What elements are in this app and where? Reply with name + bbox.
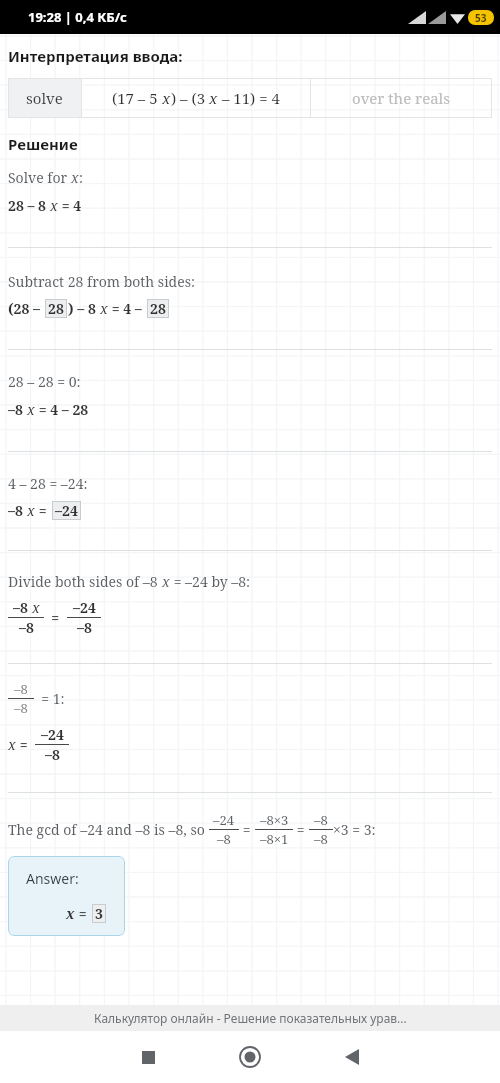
staticText: –24: [55, 501, 78, 520]
staticText: –8: [8, 400, 27, 419]
staticText: x: [27, 400, 35, 419]
staticText: Answer:: [26, 869, 79, 888]
staticText: (28 –: [8, 299, 44, 318]
staticText: (17 – 5: [112, 88, 162, 108]
staticText: x: [162, 572, 170, 591]
staticText: –8: [217, 830, 231, 848]
staticText: ) – (3: [171, 88, 209, 108]
staticText: 3: [95, 904, 103, 923]
staticText: –24: [73, 598, 96, 617]
staticText: = 4 – 28: [35, 400, 89, 419]
staticText: Solve for: [8, 168, 71, 187]
staticText: x: [162, 88, 171, 108]
staticText: 19:28 | 0,4 КБ/с: [28, 8, 127, 26]
staticText: –24: [41, 725, 64, 744]
staticText: –8: [8, 501, 27, 520]
staticText: =: [35, 501, 51, 520]
staticText: x: [71, 168, 79, 187]
staticText: –8: [314, 830, 328, 848]
staticText: 28: [48, 299, 64, 318]
staticText: –8: [14, 680, 28, 698]
staticText: –8: [14, 699, 28, 717]
staticText: 28 – 28 = 0:: [8, 372, 81, 391]
staticText: –8: [77, 618, 92, 637]
button[interactable]: solve: [8, 78, 492, 118]
button[interactable]: Recent apps: [124, 1033, 172, 1081]
staticText: ×3 = 3:: [333, 820, 376, 839]
staticText: –8: [314, 811, 328, 829]
button[interactable]: Home: [226, 1033, 274, 1081]
staticText: :: [79, 168, 84, 187]
staticText: 53: [475, 11, 487, 25]
staticText: = 1:: [34, 689, 65, 708]
button[interactable]: Калькулятор онлайн - Решение показательн…: [0, 1005, 500, 1031]
staticText: –8: [19, 618, 34, 637]
staticText: –24: [213, 811, 235, 829]
staticText: Решение: [8, 134, 78, 154]
staticText: x: [66, 904, 75, 923]
staticText: – 11) = 4: [218, 88, 280, 108]
staticText: x: [27, 501, 35, 520]
staticText: –8×1: [260, 830, 289, 848]
button[interactable]: Answer:: [8, 856, 125, 936]
staticText: Subtract 28 from both sides:: [8, 272, 196, 291]
staticText: =: [293, 820, 309, 839]
staticText: 28 – 8: [8, 196, 50, 215]
staticText: x: [50, 196, 58, 215]
staticText: = 4 –: [108, 299, 146, 318]
staticText: =: [75, 904, 91, 923]
staticText: = 4: [58, 196, 82, 215]
staticText: x: [100, 299, 108, 318]
staticText: ) – 8: [68, 299, 100, 318]
staticText: solve: [26, 88, 63, 108]
staticText: –8: [13, 598, 32, 617]
staticText: Divide both sides of –8: [8, 572, 162, 591]
staticText: over the reals: [352, 88, 451, 108]
staticText: =: [239, 820, 255, 839]
staticText: 28: [150, 299, 166, 318]
staticText: = –24 by –8:: [170, 572, 251, 591]
staticText: =: [44, 608, 67, 627]
staticText: Интерпретация ввода:: [8, 46, 183, 66]
staticText: x: [32, 598, 40, 617]
staticText: The gcd of –24 and –8 is –8, so: [8, 820, 209, 839]
staticText: –8: [45, 745, 60, 764]
staticText: x: [209, 88, 218, 108]
staticText: Калькулятор онлайн - Решение показательн…: [94, 1010, 407, 1026]
staticText: x: [8, 735, 16, 754]
staticText: –8×3: [260, 811, 289, 829]
staticText: 4 – 28 = –24:: [8, 474, 88, 493]
staticText: =: [16, 735, 35, 754]
button[interactable]: Back: [328, 1033, 376, 1081]
